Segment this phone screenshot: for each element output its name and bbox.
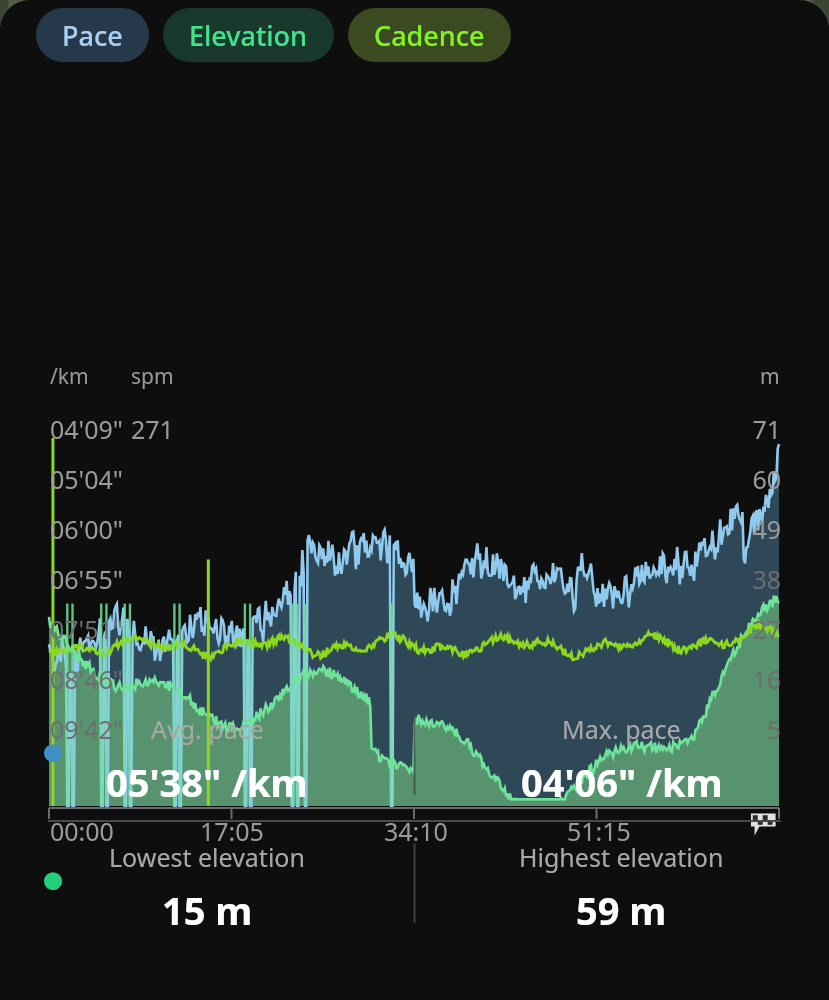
staticText: Lowest elevation [109, 840, 305, 874]
staticText: 15 m [162, 884, 253, 936]
staticText: Elevation [189, 17, 308, 54]
staticText: 05'38" /km [106, 756, 308, 808]
staticText: 17:05 [200, 814, 264, 848]
staticText: 04'06" /km [521, 756, 723, 808]
button[interactable]: Cadence [348, 8, 511, 62]
staticText: /km [50, 362, 89, 391]
staticText: 16 [721, 662, 781, 696]
staticText: 59 m [576, 884, 667, 936]
button[interactable]: Max. pace [414, 694, 829, 820]
staticText: 60 [721, 462, 781, 496]
staticText: Highest elevation [519, 840, 724, 874]
staticText: 34:10 [384, 814, 448, 848]
staticText: Max. pace [562, 712, 681, 746]
button[interactable]: Finish [748, 808, 778, 838]
staticText: 07'51" [50, 612, 124, 646]
button[interactable]: Pace [36, 8, 149, 62]
staticText: 271 [131, 412, 174, 446]
staticText: m [760, 362, 780, 391]
staticText: 00:00 [50, 814, 114, 848]
staticText: Cadence [374, 17, 485, 54]
staticText: 5 [721, 712, 781, 746]
staticText: 08'46" [50, 662, 124, 696]
button[interactable]: Avg. pace [0, 694, 414, 820]
button[interactable]: Lowest elevation [0, 822, 414, 948]
staticText: Pace [62, 17, 123, 54]
button[interactable]: Elevation [163, 8, 334, 62]
staticText: 49 [721, 512, 781, 546]
staticText: 09'42" [50, 712, 124, 746]
staticText: 38 [721, 562, 781, 596]
staticText: 04'09" [50, 412, 124, 446]
staticText: Avg. pace [151, 712, 264, 746]
staticText: 06'55" [50, 562, 124, 596]
staticText: 51:15 [567, 814, 631, 848]
staticText: 27 [721, 612, 781, 646]
staticText: 05'04" [50, 462, 124, 496]
staticText: 71 [721, 412, 781, 446]
staticText: spm [131, 362, 174, 391]
staticText: 06'00" [50, 512, 124, 546]
button[interactable]: Highest elevation [414, 822, 829, 948]
